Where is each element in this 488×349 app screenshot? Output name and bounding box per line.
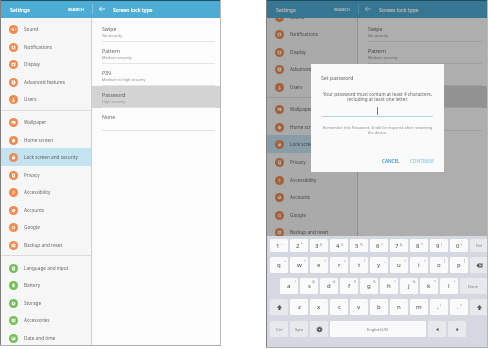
- button[interactable]: Key: [470, 299, 488, 315]
- button[interactable]: English(US): [330, 321, 426, 337]
- button[interactable]: Pattern: [92, 42, 221, 64]
- button[interactable]: Swipe: [92, 20, 221, 42]
- button[interactable]: i: [410, 257, 428, 273]
- button[interactable]: Del: [470, 239, 488, 252]
- button[interactable]: 6: [370, 239, 388, 252]
- button[interactable]: w: [290, 257, 308, 273]
- button[interactable]: 2: [290, 239, 308, 252]
- button[interactable]: Google: [0, 218, 91, 236]
- button[interactable]: g: [360, 278, 378, 294]
- button[interactable]: Home screen: [0, 131, 91, 149]
- button[interactable]: Sym: [290, 321, 308, 337]
- button[interactable]: Language and input: [266, 246, 357, 264]
- button[interactable]: Backup and reset: [266, 223, 357, 241]
- button[interactable]: Password: [358, 86, 488, 108]
- button[interactable]: 7: [390, 239, 408, 252]
- button[interactable]: 5: [350, 239, 368, 252]
- button[interactable]: 4: [330, 239, 348, 252]
- button[interactable]: Key: [310, 321, 328, 337]
- button[interactable]: Swipe: [358, 20, 488, 42]
- button[interactable]: Sound: [0, 20, 91, 38]
- button[interactable]: r: [330, 257, 348, 273]
- button[interactable]: Advanced features: [266, 60, 357, 78]
- button[interactable]: t: [350, 257, 368, 273]
- button[interactable]: None: [358, 108, 488, 131]
- button[interactable]: j: [400, 278, 418, 294]
- button[interactable]: h: [380, 278, 398, 294]
- button[interactable]: s: [300, 278, 318, 294]
- button[interactable]: .: [450, 299, 468, 315]
- button[interactable]: PIN: [92, 64, 221, 86]
- button[interactable]: m: [410, 299, 428, 315]
- button[interactable]: Sound: [266, 18, 357, 26]
- button[interactable]: z: [290, 299, 308, 315]
- button[interactable]: f: [340, 278, 358, 294]
- button[interactable]: Password: [92, 86, 221, 108]
- button[interactable]: Advanced features: [0, 73, 91, 91]
- button[interactable]: d: [320, 278, 338, 294]
- button[interactable]: ,: [430, 299, 448, 315]
- button[interactable]: Date and time: [266, 316, 357, 334]
- button[interactable]: Wallpaper: [0, 113, 91, 131]
- button[interactable]: u: [390, 257, 408, 273]
- button[interactable]: None: [92, 108, 221, 131]
- button[interactable]: Key: [470, 257, 488, 273]
- button[interactable]: 0: [450, 239, 468, 252]
- button[interactable]: Back: [99, 6, 105, 12]
- button[interactable]: Users: [266, 78, 357, 96]
- button[interactable]: b: [370, 299, 388, 315]
- button[interactable]: Backup and reset: [0, 236, 91, 254]
- button[interactable]: Notifications: [266, 25, 357, 43]
- button[interactable]: Privacy: [0, 166, 91, 184]
- button[interactable]: CONTINUE: [407, 155, 437, 167]
- button[interactable]: 8: [410, 239, 428, 252]
- button[interactable]: Key: [270, 299, 288, 315]
- button[interactable]: Battery: [266, 263, 357, 281]
- button[interactable]: Pattern: [358, 42, 488, 64]
- button[interactable]: Privacy: [266, 153, 357, 171]
- button[interactable]: Notifications: [0, 38, 91, 56]
- button[interactable]: Accessories: [0, 311, 91, 329]
- button[interactable]: 1: [270, 239, 288, 252]
- button[interactable]: Accessibility: [266, 171, 357, 189]
- button[interactable]: CANCEL: [379, 155, 403, 167]
- button[interactable]: PIN: [358, 64, 488, 86]
- button[interactable]: o: [430, 257, 448, 273]
- button[interactable]: l: [440, 278, 458, 294]
- button[interactable]: Wallpaper: [266, 100, 357, 118]
- button[interactable]: c: [330, 299, 348, 315]
- button[interactable]: Back: [365, 6, 371, 12]
- button[interactable]: Storage: [266, 281, 357, 299]
- button[interactable]: 9: [430, 239, 448, 252]
- button[interactable]: Users: [0, 90, 91, 108]
- button[interactable]: Accounts: [0, 201, 91, 219]
- button[interactable]: n: [390, 299, 408, 315]
- button[interactable]: e: [310, 257, 328, 273]
- button[interactable]: v: [350, 299, 368, 315]
- button[interactable]: Ctrl: [270, 321, 288, 337]
- button[interactable]: Lock screen and security: [266, 135, 357, 153]
- button[interactable]: Accounts: [266, 188, 357, 206]
- button[interactable]: Display: [0, 55, 91, 73]
- button[interactable]: Lock screen and security: [0, 148, 91, 166]
- button[interactable]: Battery: [0, 276, 91, 294]
- button[interactable]: Home screen: [266, 118, 357, 136]
- button[interactable]: k: [420, 278, 438, 294]
- button[interactable]: q: [270, 257, 288, 273]
- button[interactable]: Key: [428, 321, 446, 337]
- button[interactable]: Language and input: [0, 259, 91, 277]
- button[interactable]: SEARCH: [68, 6, 85, 12]
- button[interactable]: y: [370, 257, 388, 273]
- button[interactable]: Accessories: [266, 298, 357, 316]
- button[interactable]: Accessibility: [0, 183, 91, 201]
- button[interactable]: 3: [310, 239, 328, 252]
- button[interactable]: Google: [266, 206, 357, 224]
- button[interactable]: Display: [266, 43, 357, 61]
- button[interactable]: Done: [460, 278, 487, 294]
- button[interactable]: Key: [448, 321, 466, 337]
- button[interactable]: SEARCH: [334, 6, 351, 12]
- button[interactable]: x: [310, 299, 328, 315]
- button[interactable]: p: [450, 257, 468, 273]
- button[interactable]: a: [280, 278, 298, 294]
- button[interactable]: Date and time: [0, 329, 91, 346]
